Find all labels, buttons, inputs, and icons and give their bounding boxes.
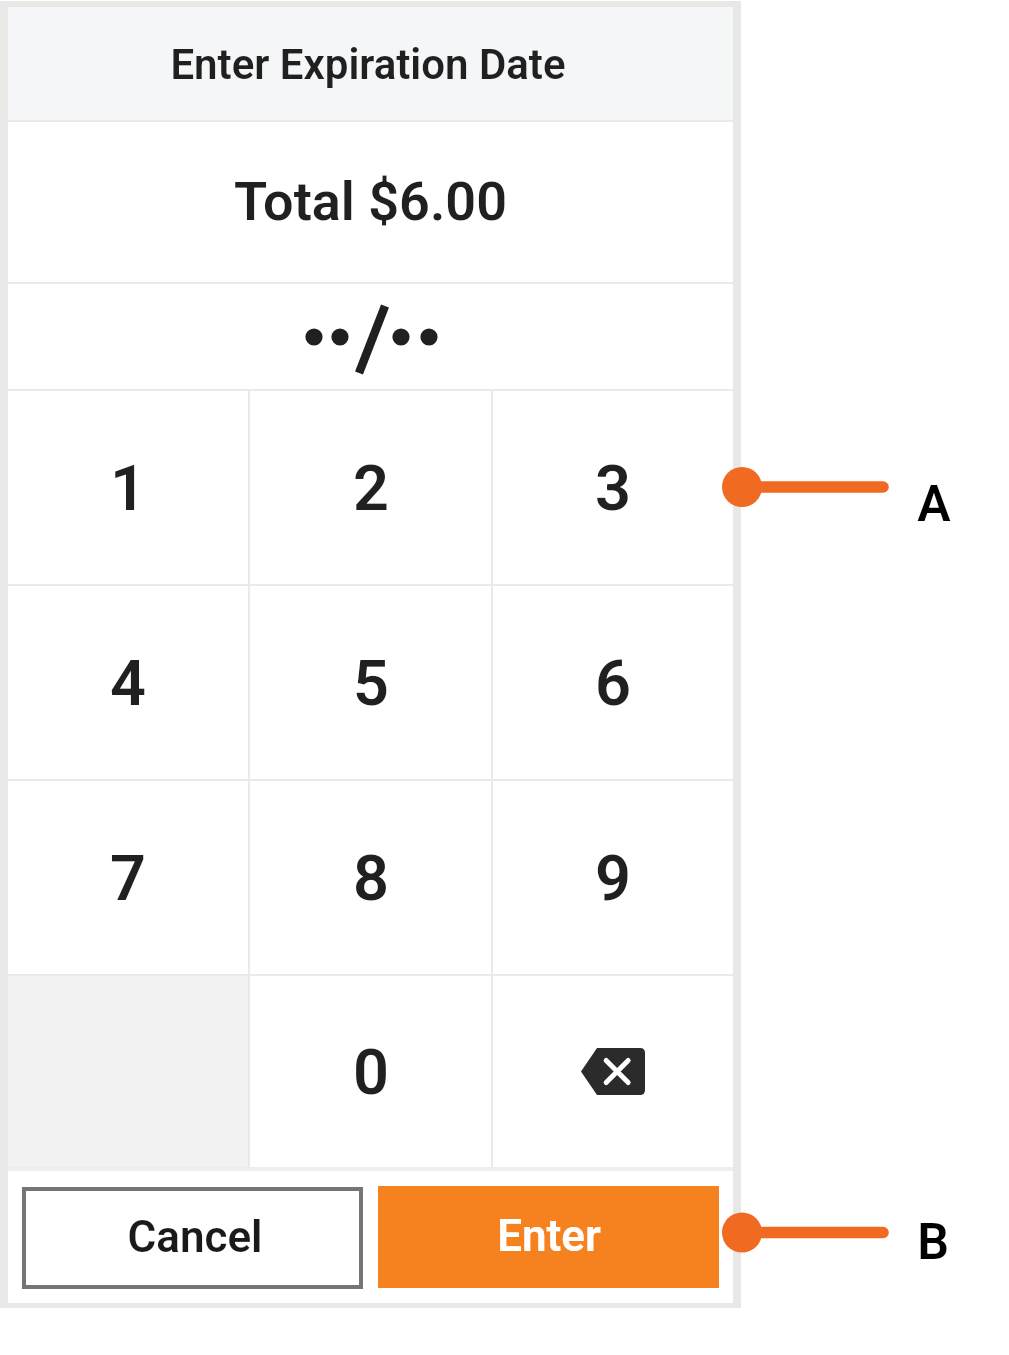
staticText: 4 [110, 647, 146, 721]
staticText: 7 [110, 842, 146, 916]
staticText: A [917, 475, 951, 534]
button[interactable]: 7 [8, 781, 248, 974]
button[interactable]: 1 [8, 391, 248, 584]
staticText: 6 [595, 647, 631, 721]
button[interactable]: Enter [378, 1186, 719, 1288]
button[interactable]: Backspace [493, 976, 733, 1167]
staticText: Cancel [127, 1211, 263, 1263]
button[interactable]: 3 [493, 391, 733, 584]
staticText: 5 [353, 647, 389, 721]
staticText: 1 [110, 452, 146, 526]
staticText: 2 [353, 452, 389, 526]
button[interactable]: 6 [493, 586, 733, 779]
button[interactable]: 2 [250, 391, 491, 584]
staticText: Enter [497, 1210, 601, 1262]
button[interactable]: 8 [250, 781, 491, 974]
staticText: 0 [353, 1036, 389, 1110]
button[interactable]: 9 [493, 781, 733, 974]
staticText: Total $6.00 [234, 170, 507, 233]
button[interactable]: 0 [250, 976, 491, 1167]
button[interactable]: Cancel [22, 1187, 363, 1289]
staticText: 9 [595, 842, 631, 916]
staticText: 3 [595, 452, 631, 526]
staticText: B [917, 1213, 949, 1272]
button[interactable]: Enter Expiration Date [8, 7, 733, 120]
button[interactable]: 4 [8, 586, 248, 779]
staticText: 8 [353, 842, 389, 916]
button[interactable] [8, 284, 733, 389]
button[interactable]: 5 [250, 586, 491, 779]
staticText: Enter Expiration Date [170, 40, 566, 89]
